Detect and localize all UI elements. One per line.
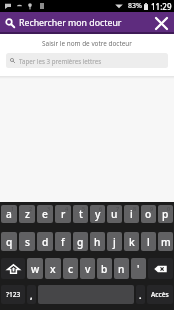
staticText: y — [95, 207, 101, 221]
button[interactable]: d — [37, 232, 53, 251]
staticText: 7 — [116, 205, 120, 212]
staticText: 1 — [11, 205, 15, 212]
staticText: f — [61, 235, 65, 249]
button[interactable]: ' — [131, 258, 146, 279]
button[interactable] — [148, 258, 173, 279]
button[interactable]: n — [114, 258, 129, 279]
staticText: p — [162, 207, 169, 221]
button[interactable]: 3 — [37, 205, 53, 223]
button[interactable]: l — [141, 232, 156, 251]
button[interactable]: 5 — [73, 205, 88, 223]
staticText: 83% — [128, 1, 142, 11]
staticText: Saisir le nom de votre docteur — [42, 39, 132, 48]
staticText: b — [101, 262, 108, 276]
button[interactable]: m — [158, 232, 173, 251]
button[interactable]: , — [27, 285, 36, 304]
button[interactable]: 9 — [141, 205, 156, 223]
button[interactable]: j — [107, 232, 122, 251]
button[interactable]: 6 — [90, 205, 105, 223]
staticText: 0 — [167, 205, 171, 212]
staticText: h — [94, 235, 101, 249]
button[interactable]: f — [55, 232, 71, 251]
staticText: , — [30, 289, 33, 301]
staticText: 3 — [47, 205, 51, 212]
staticText: c — [68, 262, 74, 276]
staticText: j — [113, 235, 116, 249]
staticText: k — [129, 235, 135, 249]
staticText: l — [147, 235, 150, 249]
staticText: d — [42, 235, 49, 249]
button[interactable]: 8 — [124, 205, 139, 223]
staticText: 5 — [82, 205, 86, 212]
staticText: 4 — [65, 205, 69, 212]
staticText: s — [25, 235, 30, 249]
staticText: u — [111, 207, 118, 221]
staticText: v — [85, 262, 91, 276]
button[interactable]: v — [80, 258, 95, 279]
staticText: Accès — [151, 290, 169, 299]
button[interactable]: . — [136, 285, 145, 304]
button[interactable]: b — [97, 258, 112, 279]
staticText: o — [145, 207, 152, 221]
button[interactable]: 7 — [107, 205, 122, 223]
button[interactable]: Accès — [147, 285, 173, 304]
staticText: i — [130, 207, 133, 221]
staticText: 11:29 — [151, 1, 172, 12]
staticText: . — [139, 289, 142, 301]
button[interactable]: g — [73, 232, 88, 251]
staticText: w — [31, 262, 40, 276]
button[interactable]: h — [90, 232, 105, 251]
staticText: ?123 — [6, 290, 21, 299]
button[interactable]: 1 — [1, 205, 17, 223]
staticText: 9 — [150, 205, 154, 212]
staticText: n — [118, 262, 125, 276]
staticText: z — [25, 207, 30, 221]
staticText: 8 — [133, 205, 137, 212]
button[interactable]: Search — [0, 12, 19, 34]
staticText: r — [61, 207, 66, 221]
staticText: m — [161, 235, 171, 249]
button[interactable]: 0 — [158, 205, 173, 223]
button[interactable]: ?123 — [1, 285, 25, 304]
button[interactable]: Close — [148, 12, 174, 34]
button[interactable]: Taper les 3 premières lettres — [6, 53, 168, 68]
button[interactable]: s — [19, 232, 35, 251]
staticText: q — [6, 235, 13, 249]
button[interactable]: 2 — [19, 205, 35, 223]
button[interactable]: w — [27, 258, 43, 279]
staticText: 2 — [29, 205, 33, 212]
staticText: x — [50, 262, 56, 276]
staticText: g — [77, 235, 84, 249]
button[interactable]: k — [124, 232, 139, 251]
staticText: Taper les 3 premières lettres — [19, 57, 102, 65]
button[interactable]: x — [45, 258, 61, 279]
staticText: e — [42, 207, 48, 221]
staticText: t — [79, 207, 83, 221]
staticText: a — [6, 207, 12, 221]
staticText: ' — [137, 262, 140, 276]
staticText: 6 — [99, 205, 103, 212]
button[interactable]: 4 — [55, 205, 71, 223]
staticText: Rechercher mon docteur — [19, 17, 122, 29]
button[interactable] — [1, 258, 25, 279]
button[interactable]: q — [1, 232, 17, 251]
button[interactable]: c — [63, 258, 78, 279]
